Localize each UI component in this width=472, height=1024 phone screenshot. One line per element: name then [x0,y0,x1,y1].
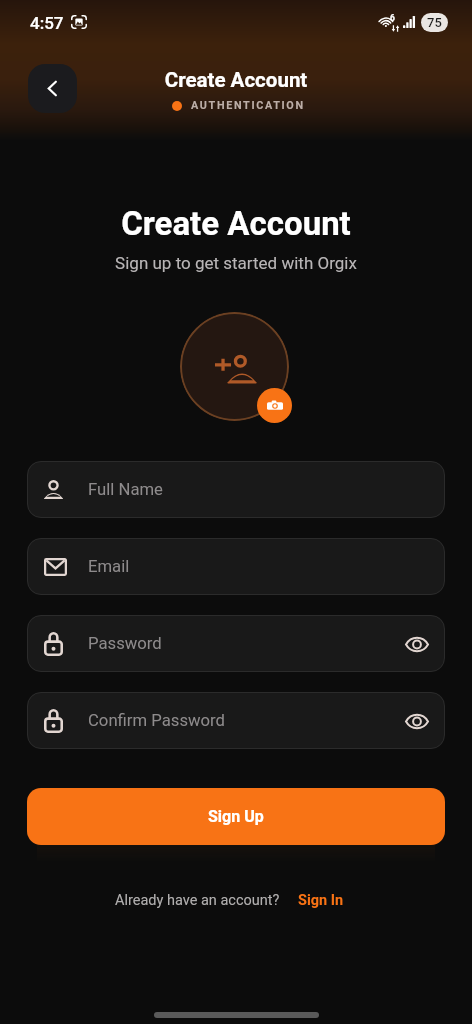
staticText: Sign In [298,892,344,909]
button[interactable]: Email [27,538,445,595]
button[interactable]: Sign In [298,892,344,909]
button[interactable]: Password [27,615,445,672]
staticText: 6 [390,13,395,23]
staticText: 75 [427,15,442,30]
button[interactable]: Toggle password visibility [403,630,431,658]
staticText: AUTHENTICATION [191,99,305,112]
staticText: Already have an account? [115,892,280,909]
staticText: Sign Up [208,807,264,826]
button[interactable]: Confirm Password [27,692,445,749]
staticText: 4:57 [30,13,64,33]
button[interactable]: Add profile photo [180,312,289,421]
staticText: Confirm Password [88,711,225,731]
staticText: Sign up to get started with Orgix [0,253,472,273]
staticText: Create Account [0,204,472,243]
button[interactable]: Full Name [27,461,445,518]
staticText: Full Name [88,480,163,500]
button[interactable]: Change photo [257,388,292,423]
staticText: Email [88,557,130,577]
staticText: Create Account [0,68,472,92]
button[interactable]: Sign Up [27,788,445,845]
button[interactable]: Toggle password visibility [403,707,431,735]
button[interactable]: Back [28,64,77,113]
staticText: Password [88,634,162,654]
